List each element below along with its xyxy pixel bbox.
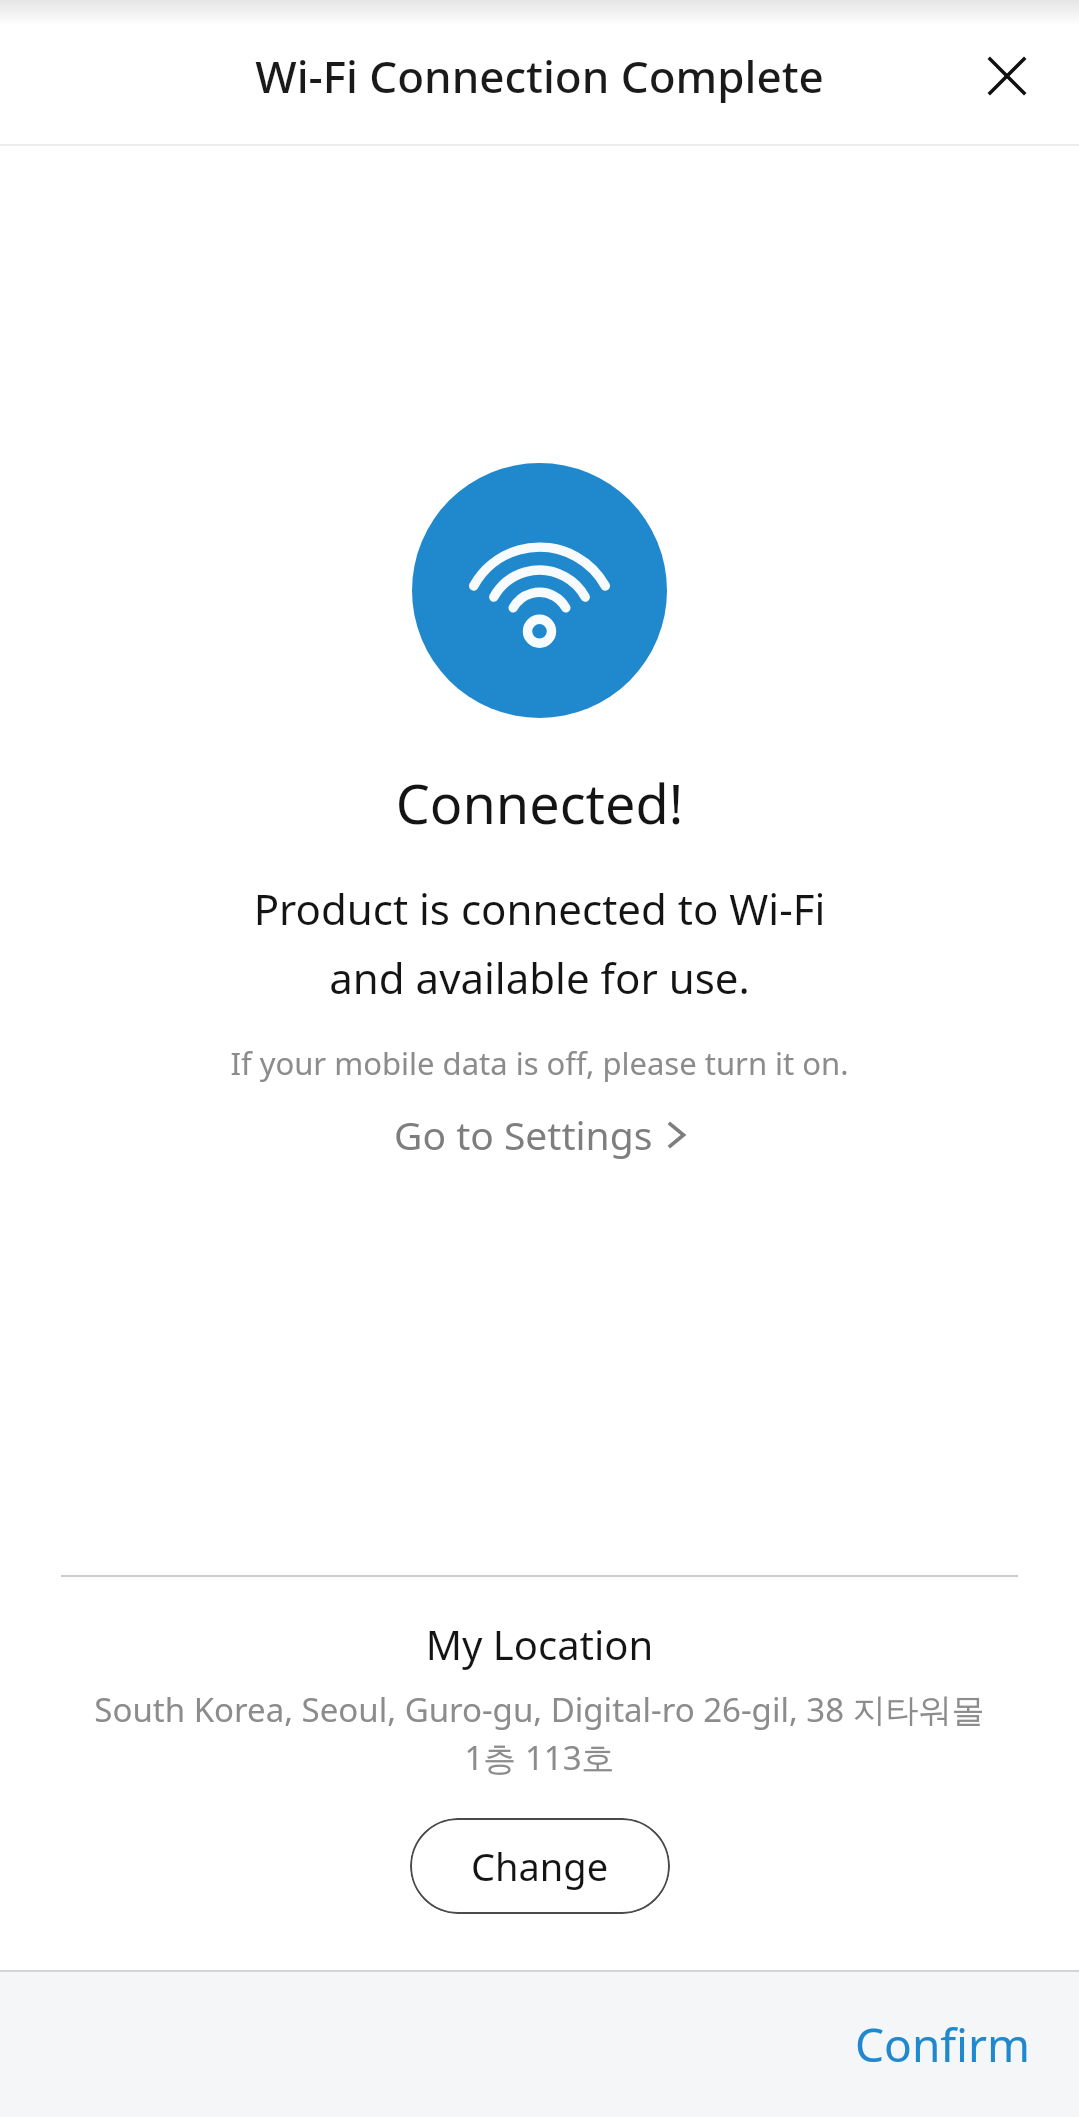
staticText: South Korea, Seoul, Guro-gu, Digital-ro … xyxy=(84,1687,995,1780)
staticText: Confirm xyxy=(855,2013,1031,2076)
staticText: Change xyxy=(471,1840,609,1892)
button[interactable]: Close xyxy=(961,30,1053,122)
staticText: If your mobile data is off, please turn … xyxy=(0,1042,1079,1084)
staticText: Connected! xyxy=(0,766,1079,840)
staticText: My Location xyxy=(0,1617,1079,1671)
button[interactable]: Confirm xyxy=(829,1995,1057,2094)
button[interactable]: Go to Settings xyxy=(380,1100,699,1169)
button[interactable]: Change xyxy=(410,1818,670,1914)
staticText: Product is connected to Wi-Fi and availa… xyxy=(0,880,1079,1006)
staticText: Wi-Fi Connection Complete xyxy=(0,46,1079,106)
staticText: Go to Settings xyxy=(394,1108,653,1161)
